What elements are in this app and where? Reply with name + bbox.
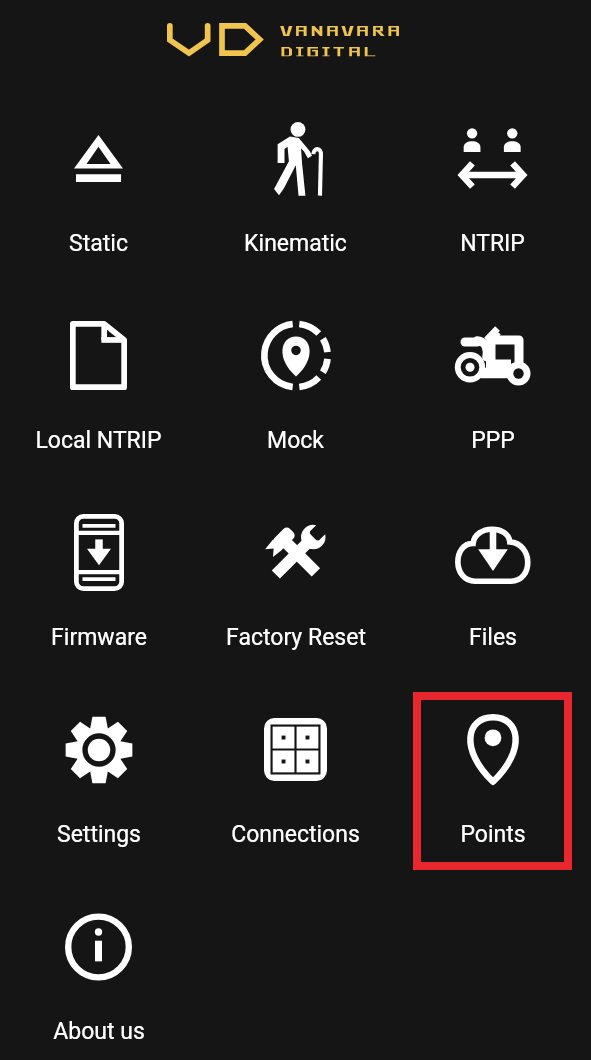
other: Factory Reset (265, 519, 327, 586)
staticText: DIGITAL (279, 43, 378, 56)
other: Mock (261, 321, 331, 390)
staticText: PPP (471, 427, 515, 454)
button[interactable]: Files (413, 495, 572, 673)
other: Local NTRIP (70, 321, 127, 390)
button[interactable]: Mock (216, 298, 375, 476)
other: PPP (455, 327, 530, 384)
other: NTRIP (459, 128, 526, 189)
button[interactable]: Settings (19, 692, 178, 870)
staticText: Mock (267, 427, 324, 454)
staticText: NTRIP (460, 230, 525, 257)
button[interactable]: Points (413, 692, 572, 870)
button[interactable]: PPP (413, 298, 572, 476)
staticText: Static (69, 230, 128, 257)
other: About us (65, 912, 132, 982)
other: Static (74, 135, 123, 182)
staticText: Connections (231, 821, 360, 848)
other: Files (454, 522, 532, 584)
other: Settings (65, 715, 133, 785)
staticText: Firmware (51, 624, 147, 651)
staticText: Points (460, 821, 526, 848)
other: Connections (264, 718, 327, 781)
button[interactable]: Local NTRIP (19, 298, 178, 476)
staticText: Settings (57, 821, 141, 848)
button[interactable]: Static (19, 101, 178, 279)
staticText: Factory Reset (226, 624, 366, 651)
button[interactable]: About us (19, 889, 178, 1060)
staticText: Local NTRIP (35, 427, 162, 454)
other: Kinematic (268, 122, 323, 196)
other: Points (465, 714, 521, 785)
staticText: Files (469, 624, 517, 651)
button[interactable]: Kinematic (216, 101, 375, 279)
other: Firmware (74, 514, 124, 591)
staticText: About us (53, 1018, 145, 1045)
staticText: Kinematic (244, 230, 347, 257)
button[interactable]: Connections (216, 692, 375, 870)
button[interactable]: Factory Reset (216, 495, 375, 673)
button[interactable]: NTRIP (413, 101, 572, 279)
button[interactable]: Firmware (19, 495, 178, 673)
staticText: VANAVARA (279, 22, 402, 39)
